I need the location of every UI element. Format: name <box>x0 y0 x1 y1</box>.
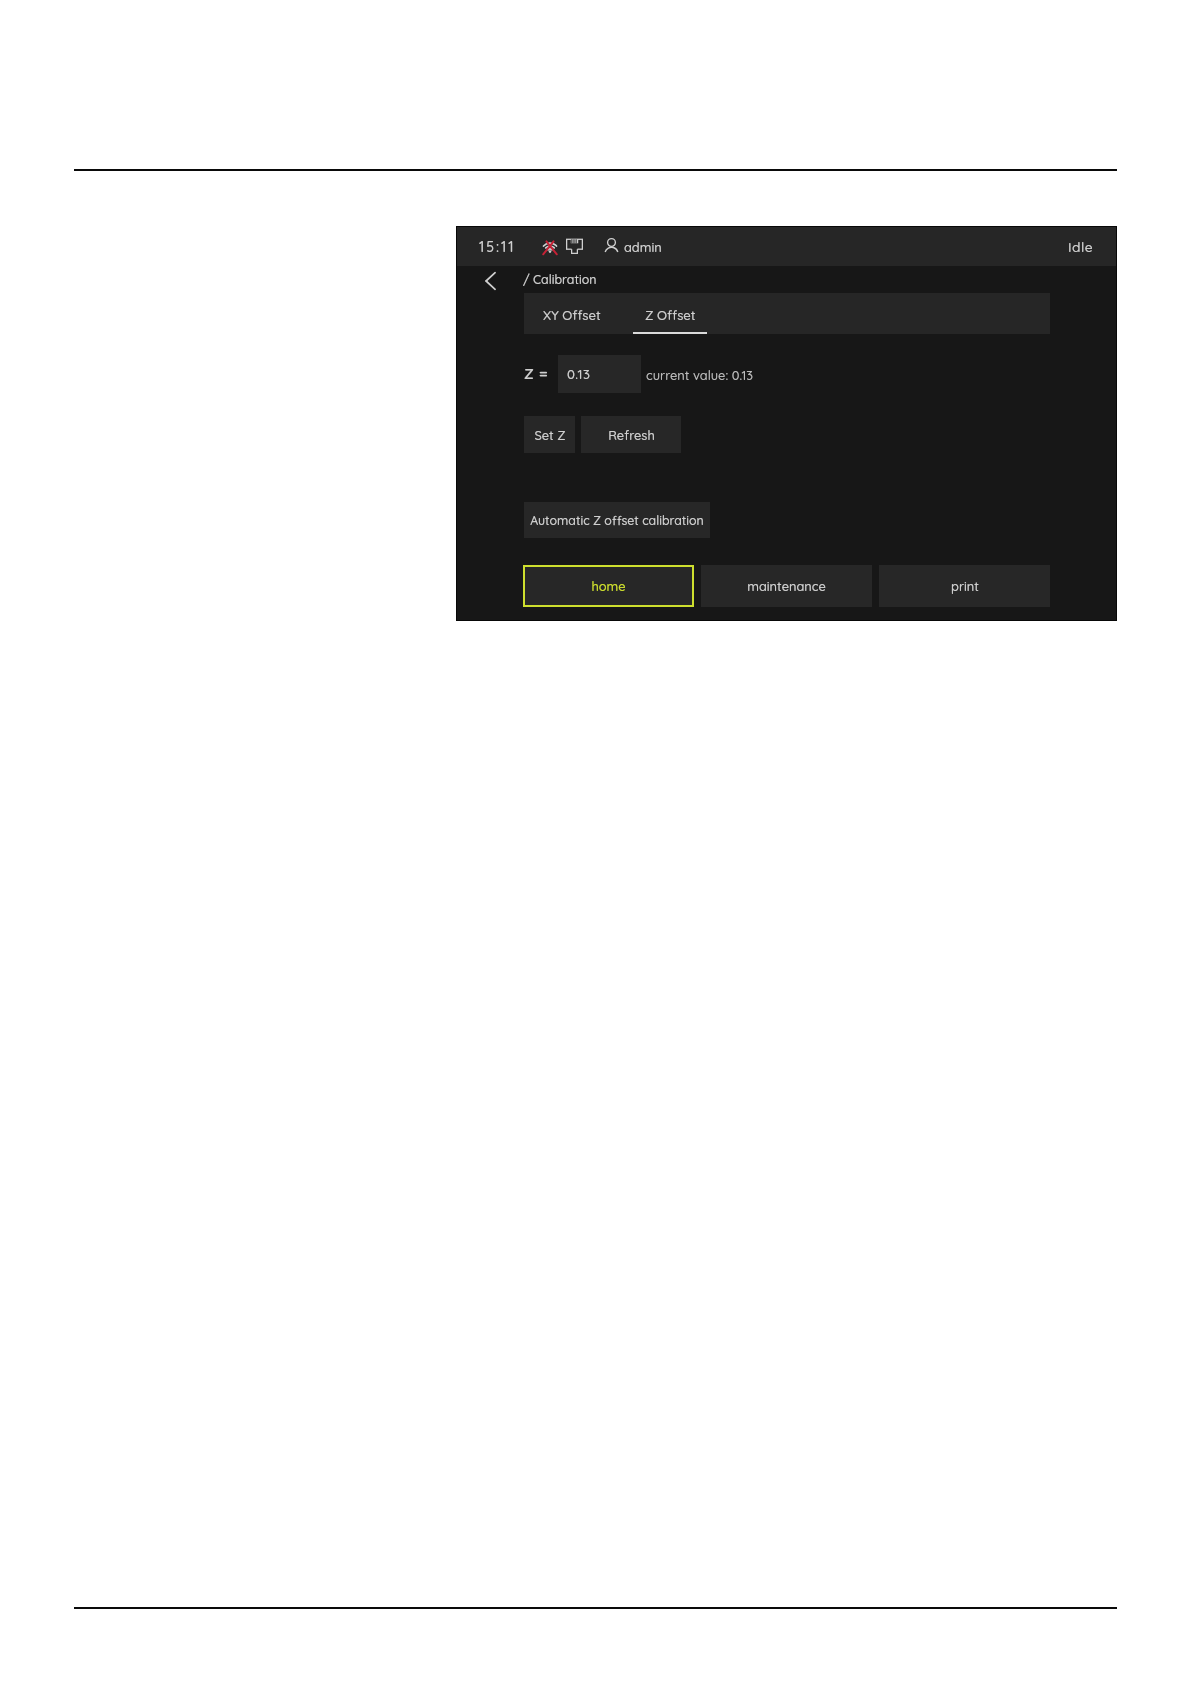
staticText: print <box>951 578 979 594</box>
button[interactable]: WiFi disconnected <box>538 232 562 260</box>
button[interactable]: XY Offset <box>531 293 613 334</box>
button[interactable]: Back <box>475 267 505 295</box>
button[interactable]: 0.13 <box>558 355 641 393</box>
staticText: admin <box>624 239 662 255</box>
staticText: home <box>591 578 626 594</box>
staticText: / Calibration <box>523 272 597 287</box>
staticText: Z = <box>524 364 549 383</box>
staticText: 0.13 <box>567 366 591 382</box>
button[interactable]: Ethernet connection <box>562 232 586 260</box>
button[interactable]: print <box>879 565 1050 607</box>
staticText: current value: 0.13 <box>646 367 754 383</box>
button[interactable]: Account <box>601 232 654 260</box>
button[interactable]: Set Z <box>524 416 575 453</box>
other: Account <box>604 238 619 254</box>
button[interactable]: Z Offset <box>633 293 707 334</box>
staticText: Idle <box>1068 238 1094 255</box>
staticText: Automatic Z offset calibration <box>530 513 704 528</box>
staticText: 15:11 <box>479 238 516 256</box>
button[interactable]: home <box>523 565 694 607</box>
staticText: Z Offset <box>645 307 696 323</box>
staticText: XY Offset <box>543 307 601 323</box>
staticText: Set Z <box>534 427 566 443</box>
staticText: Refresh <box>608 427 655 443</box>
other: WiFi disconnected <box>541 238 559 255</box>
staticText: maintenance <box>747 578 826 594</box>
button[interactable]: Automatic Z offset calibration <box>524 502 710 538</box>
other: Ethernet <box>566 238 583 254</box>
button[interactable]: maintenance <box>701 565 872 607</box>
button[interactable]: Refresh <box>581 416 681 453</box>
